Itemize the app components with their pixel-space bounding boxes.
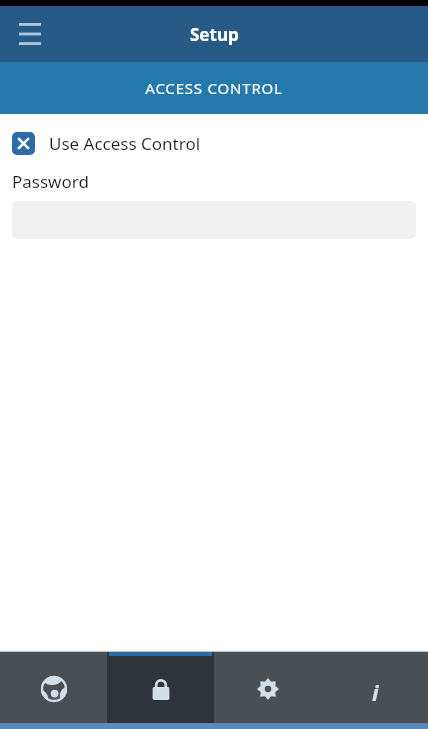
button[interactable]: Information <box>321 651 428 723</box>
button[interactable]: ACCESS CONTROL <box>0 62 428 114</box>
staticText: i <box>372 677 379 701</box>
button[interactable]: Network <box>0 651 107 723</box>
staticText: Use Access Control <box>49 132 201 155</box>
button[interactable]: Use Access Control <box>12 128 416 158</box>
staticText: ACCESS CONTROL <box>145 78 283 98</box>
staticText: Setup <box>190 23 239 46</box>
button[interactable]: Access control <box>107 651 214 723</box>
button[interactable]: Open navigation menu <box>8 12 52 56</box>
staticText: Password <box>12 170 89 193</box>
button[interactable]: Settings <box>214 651 321 723</box>
